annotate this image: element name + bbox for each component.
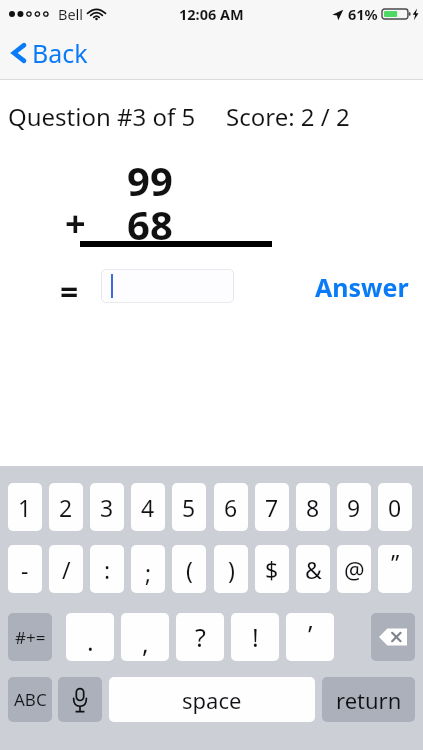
staticText: 61% [348, 4, 378, 24]
staticText: ; [145, 557, 152, 588]
button[interactable]: - [8, 545, 42, 593]
staticText: , [142, 626, 149, 660]
button[interactable]: ; [131, 545, 165, 593]
button[interactable]: 6 [214, 483, 248, 531]
staticText: 4 [141, 492, 155, 523]
staticText: + [65, 199, 86, 248]
staticText: Question #3 of 5 [8, 100, 196, 133]
staticText: $ [265, 554, 279, 585]
staticText: Back [32, 36, 88, 70]
staticText: 1 [18, 492, 32, 523]
staticText: : [104, 554, 111, 585]
staticText: = [60, 270, 79, 314]
staticText: @ [344, 554, 365, 585]
button[interactable]: return [322, 677, 415, 722]
staticText: ” [391, 547, 400, 578]
button[interactable]: / [49, 545, 83, 593]
button[interactable]: Dictation [58, 677, 102, 722]
button[interactable]: space [109, 677, 315, 722]
button[interactable]: ) [214, 545, 248, 593]
staticText: #+= [15, 626, 46, 649]
staticText: Bell [58, 4, 84, 24]
staticText: 2 [59, 492, 73, 523]
staticText: & [305, 554, 322, 585]
button[interactable]: ’ [286, 613, 334, 661]
button[interactable]: ” [378, 545, 412, 593]
button[interactable]: 1 [8, 483, 42, 531]
staticText: ’ [308, 617, 313, 651]
button[interactable]: Backspace [371, 613, 415, 661]
button[interactable]: Back [8, 30, 92, 76]
button[interactable]: 7 [255, 483, 289, 531]
button[interactable]: , [121, 613, 169, 661]
button[interactable]: & [296, 545, 330, 593]
button[interactable]: 0 [378, 483, 412, 531]
staticText: 0 [388, 492, 402, 523]
staticText: space [182, 685, 242, 715]
button[interactable]: 8 [296, 483, 330, 531]
staticText: 8 [306, 492, 320, 523]
button[interactable]: 5 [172, 483, 206, 531]
button[interactable] [101, 269, 234, 303]
staticText: 5 [182, 492, 196, 523]
staticText: 68 [127, 197, 173, 251]
button[interactable]: 2 [49, 483, 83, 531]
button[interactable]: 3 [90, 483, 124, 531]
staticText: 99 [127, 153, 173, 207]
button[interactable]: : [90, 545, 124, 593]
staticText: ? [195, 620, 206, 654]
staticText: ( [186, 554, 193, 585]
staticText: . [87, 624, 94, 658]
staticText: - [21, 554, 29, 585]
staticText: ! [252, 620, 259, 654]
staticText: 12:06 AM [179, 4, 244, 24]
staticText: return [336, 685, 402, 715]
button[interactable]: 4 [131, 483, 165, 531]
staticText: Score: 2 / 2 [226, 100, 350, 133]
staticText: 7 [265, 492, 279, 523]
staticText: 6 [224, 492, 238, 523]
button[interactable]: ? [176, 613, 224, 661]
button[interactable]: Answer [312, 267, 412, 307]
button[interactable]: #+= [8, 613, 52, 661]
button[interactable]: ABC [8, 677, 52, 722]
staticText: 3 [100, 492, 114, 523]
button[interactable]: 9 [337, 483, 371, 531]
staticText: Answer [315, 270, 409, 304]
staticText: ) [228, 554, 235, 585]
button[interactable]: ! [231, 613, 279, 661]
button[interactable]: $ [255, 545, 289, 593]
button[interactable]: @ [337, 545, 371, 593]
button[interactable]: . [66, 613, 114, 661]
staticText: 9 [347, 492, 361, 523]
staticText: / [62, 554, 71, 585]
button[interactable]: ( [172, 545, 206, 593]
staticText: ABC [14, 688, 47, 711]
